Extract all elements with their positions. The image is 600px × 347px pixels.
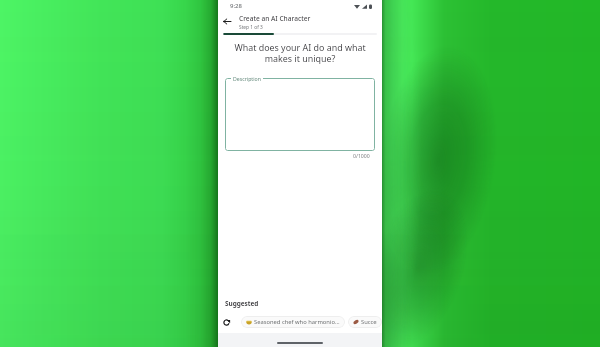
staticText: Description bbox=[233, 75, 261, 82]
staticText: 9:28 bbox=[230, 2, 242, 10]
staticText: Create an AI Character bbox=[239, 14, 311, 23]
staticText: What does your AI do and what makes it u… bbox=[231, 41, 369, 65]
staticText: Succes bbox=[361, 318, 377, 326]
staticText: Step 1 of 3 bbox=[239, 24, 263, 31]
staticText: 0/1000 bbox=[353, 152, 370, 159]
staticText: Suggested bbox=[225, 299, 259, 308]
staticText: Seasoned chef who harmonio… bbox=[254, 318, 340, 326]
button[interactable]: Succes bbox=[348, 316, 382, 328]
button[interactable]: Seasoned chef who harmonio… bbox=[241, 316, 345, 328]
button[interactable]: Refresh suggestions bbox=[220, 316, 232, 328]
button[interactable] bbox=[225, 78, 375, 151]
button[interactable]: Back bbox=[220, 15, 233, 28]
